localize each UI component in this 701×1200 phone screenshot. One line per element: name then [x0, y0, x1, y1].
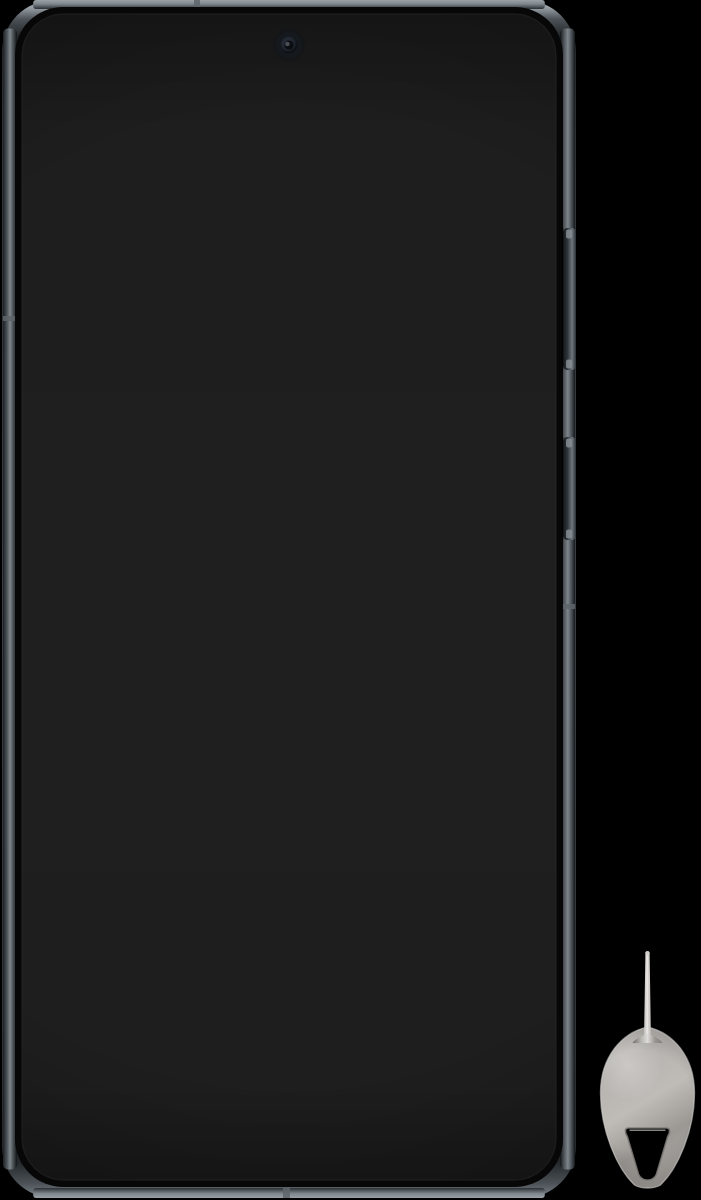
other: SIM card ejector tool: [0, 0, 701, 1200]
button[interactable]: Smartphone, screen off: [0, 0, 701, 1200]
